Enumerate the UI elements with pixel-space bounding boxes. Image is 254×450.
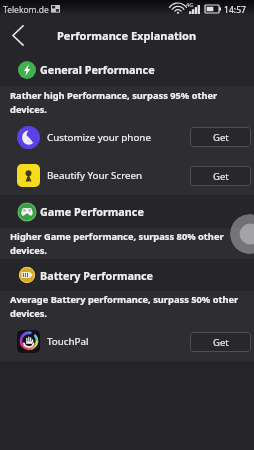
button[interactable]: Back [0, 18, 36, 53]
staticText: Get [213, 170, 229, 183]
staticText: 4G [186, 1, 194, 8]
staticText: Average Battery performance, surpass 50%… [10, 293, 254, 320]
button[interactable]: TouchPal [17, 321, 251, 362]
staticText: Beautify Your Screen [47, 169, 190, 182]
staticText: Game Performance [40, 204, 144, 219]
staticText: 14:57 [224, 4, 246, 16]
staticText: Battery Performance [40, 268, 154, 283]
button[interactable]: Customize your phone [17, 118, 251, 156]
button[interactable]: Get [190, 166, 251, 186]
button[interactable]: Get [190, 127, 251, 147]
staticText: General Performance [40, 62, 155, 77]
staticText: Rather high Performance, surpass 95% oth… [10, 89, 254, 116]
button[interactable]: Beautify Your Screen [17, 156, 251, 195]
staticText: TouchPal [47, 335, 190, 348]
staticText: Get [213, 131, 229, 144]
button[interactable]: Assistive touch [230, 214, 254, 254]
staticText: Get [213, 336, 229, 349]
staticText: Customize your phone [47, 131, 190, 144]
button[interactable]: Get [190, 332, 251, 352]
staticText: Telekom.de [3, 4, 49, 16]
staticText: Performance Explanation [57, 28, 197, 43]
staticText: Higher Game performance, surpass 80% oth… [10, 230, 254, 257]
